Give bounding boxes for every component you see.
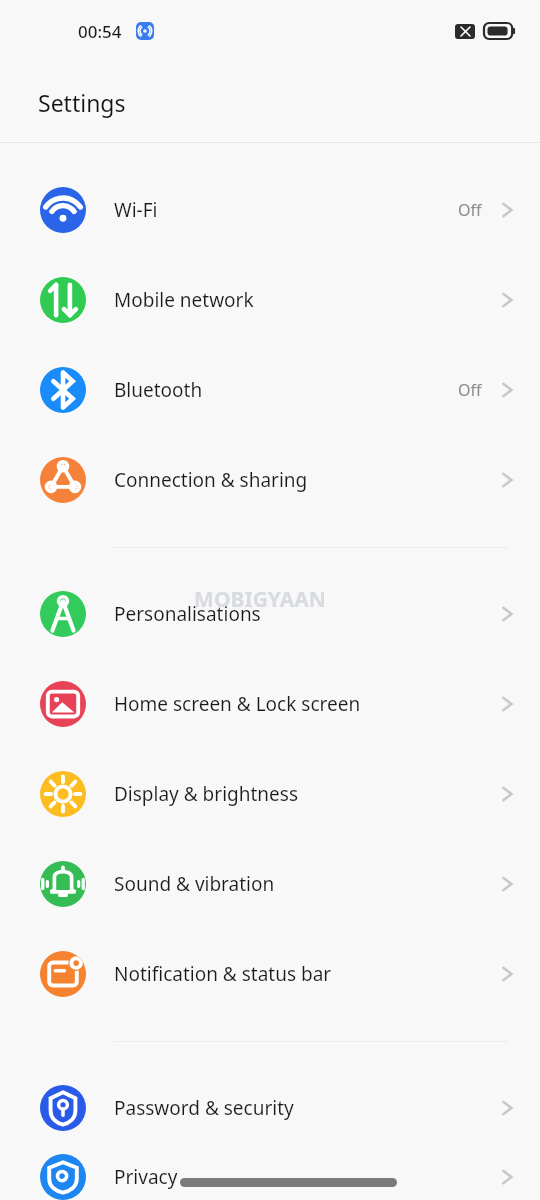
button[interactable]: Connection & sharing — [0, 435, 540, 525]
staticText: Settings — [38, 87, 126, 118]
button[interactable]: Display & brightness — [0, 749, 540, 839]
staticText: Sound & vibration — [114, 871, 496, 897]
button[interactable]: Bluetooth — [0, 345, 540, 435]
staticText: Display & brightness — [114, 781, 496, 807]
button[interactable]: Mobile network — [0, 255, 540, 345]
staticText: Notification & status bar — [114, 961, 496, 987]
staticText: Mobile network — [114, 287, 496, 313]
button[interactable]: Wi-Fi — [0, 165, 540, 255]
staticText: Home screen & Lock screen — [114, 691, 496, 717]
staticText: Off — [458, 379, 482, 401]
button[interactable]: Sound & vibration — [0, 839, 540, 929]
button[interactable]: Privacy — [0, 1153, 540, 1200]
button[interactable]: Password & security — [0, 1063, 540, 1153]
staticText: Personalisations — [114, 601, 496, 627]
button[interactable]: Notification & status bar — [0, 929, 540, 1019]
button[interactable]: Personalisations — [0, 569, 540, 659]
staticText: Connection & sharing — [114, 467, 496, 493]
button[interactable]: Home screen & Lock screen — [0, 659, 540, 749]
staticText: MOBIGYAAN — [194, 585, 326, 614]
staticText: Password & security — [114, 1095, 496, 1121]
staticText: Privacy — [114, 1164, 496, 1190]
staticText: 00:54 — [78, 20, 122, 43]
staticText: Off — [458, 199, 482, 221]
staticText: Wi-Fi — [114, 197, 458, 223]
staticText: Bluetooth — [114, 377, 458, 403]
